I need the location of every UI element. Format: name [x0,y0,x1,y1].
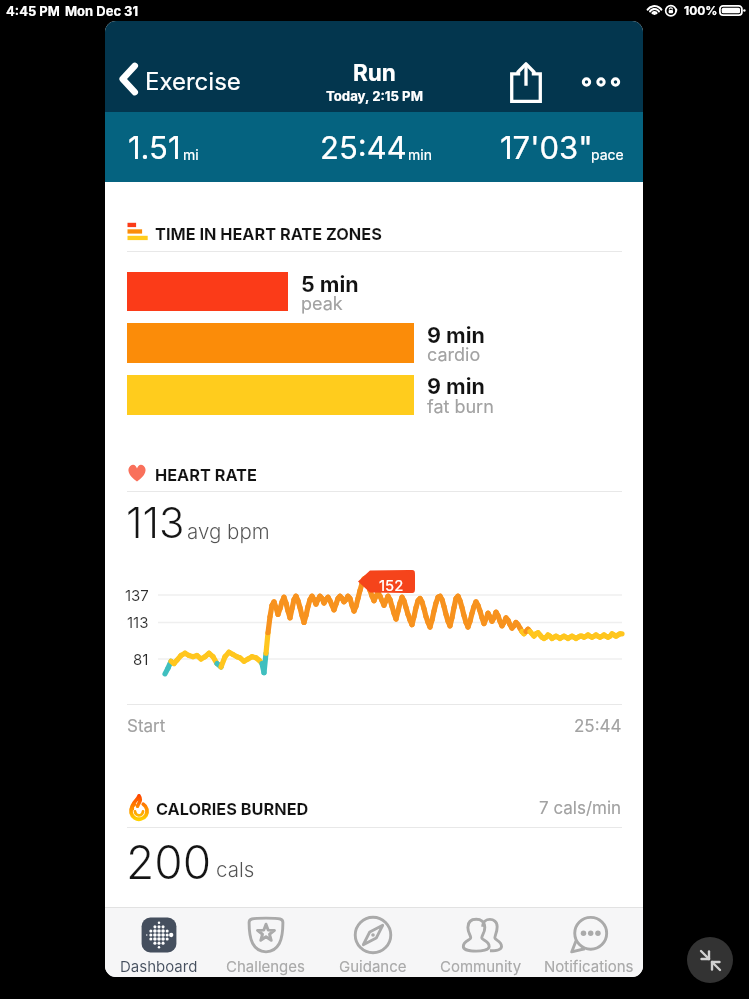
staticText: peak [301,293,343,315]
staticText: 17'03" [500,129,593,167]
staticText: 9 min [427,322,485,348]
staticText: 1.51 [128,129,181,167]
staticText: 7 cals/min [539,798,622,819]
button[interactable]: Back [111,57,145,101]
staticText: 25:44 [574,716,622,737]
staticText: CALORIES BURNED [156,799,309,819]
staticText: Start [127,716,166,737]
staticText: 113 [127,613,149,631]
button[interactable]: Community [427,907,535,977]
staticText: Notifications [544,957,634,975]
staticText: Challenges [226,957,305,975]
button[interactable]: Challenges [212,907,319,977]
staticText: cals [216,857,255,882]
staticText: 4:45 PM [6,3,60,19]
staticText: HEART RATE [155,465,257,485]
button[interactable]: Minimize [687,937,733,983]
staticText: 5 min [301,271,359,297]
staticText: avg bpm [187,519,270,544]
staticText: 200 [126,834,212,890]
button[interactable]: Share [498,52,554,112]
staticText: 100% [684,3,718,18]
staticText: 81 [133,650,149,668]
staticText: Exercise [145,67,241,96]
staticText: Today, 2:15 PM [326,88,423,104]
button[interactable]: Dashboard [105,907,212,977]
staticText: TIME IN HEART RATE ZONES [155,224,382,244]
staticText: min [408,146,432,163]
staticText: Run [353,59,396,86]
staticText: Guidance [339,957,407,975]
button[interactable]: Notifications [535,907,643,977]
staticText: pace [591,146,624,163]
staticText: Community [440,957,522,975]
staticText: 9 min [427,373,485,399]
staticText: 152 [379,576,404,594]
staticText: cardio [427,344,481,366]
staticText: 25:44 [320,129,407,167]
staticText: 137 [125,586,149,604]
staticText: mi [183,146,199,163]
staticText: Dashboard [120,957,198,975]
staticText: Mon Dec 31 [65,3,139,19]
staticText: 113 [126,497,185,548]
button[interactable]: More options [570,57,632,106]
staticText: fat burn [427,396,494,418]
button[interactable]: Guidance [319,907,427,977]
